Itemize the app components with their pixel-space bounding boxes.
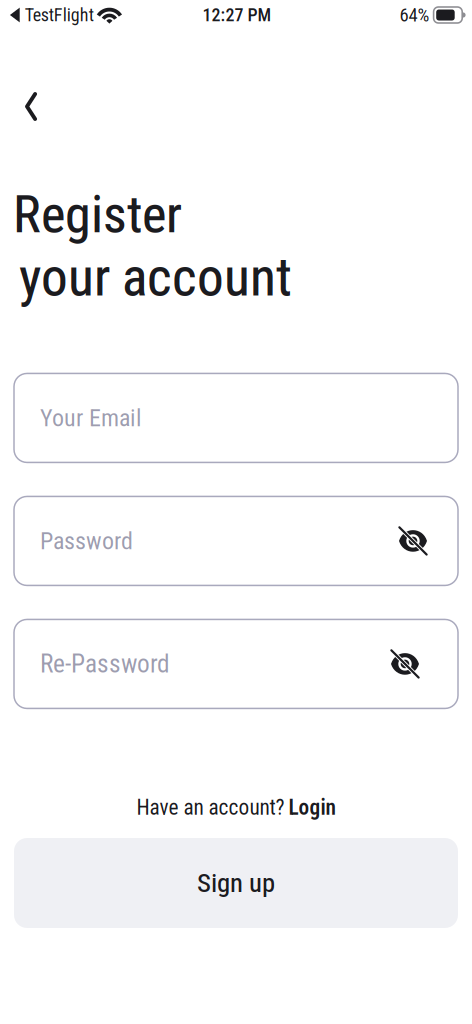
staticText: 12:27 PM [202,4,271,26]
button[interactable]: Show Re-Password [390,649,420,679]
button[interactable]: Back [0,84,58,129]
staticText: TestFlight [25,4,94,26]
staticText: Sign up [197,867,275,899]
staticText: your account [19,246,292,308]
staticText: Login [288,795,335,820]
staticText: Register [13,184,182,245]
staticText: Re-Password [40,649,170,679]
staticText: Password [40,527,133,555]
staticText: Have an account? [136,795,284,820]
button[interactable]: Sign up [14,838,458,928]
staticText: 64% [400,4,430,26]
button[interactable]: Your Email [14,373,458,462]
button[interactable]: Re-Password [14,619,458,708]
staticText: Your Email [40,404,142,432]
button[interactable]: Login [288,795,335,820]
button[interactable]: Password [14,496,458,585]
button[interactable]: Show Password [398,526,428,556]
